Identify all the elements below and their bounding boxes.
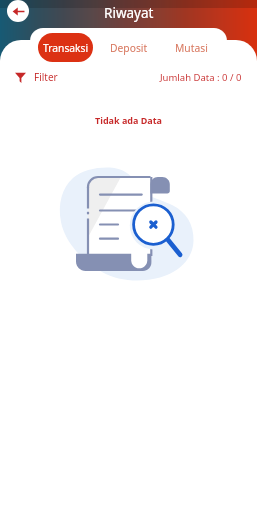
button[interactable]: Deposit — [97, 33, 160, 62]
staticText: Riwayat — [104, 4, 154, 22]
staticText: Filter — [34, 70, 58, 84]
staticText: Mutasi — [175, 41, 208, 55]
button[interactable]: Transaksi — [38, 33, 93, 62]
staticText: Tidak ada Data — [95, 114, 162, 126]
staticText: Transaksi — [43, 41, 89, 55]
button[interactable]: Mutasi — [160, 33, 223, 62]
staticText: Jumlah Data : 0 / 0 — [160, 71, 242, 84]
button[interactable]: Back — [7, 0, 29, 22]
button[interactable]: Filter — [15, 70, 58, 84]
staticText: Deposit — [110, 41, 148, 55]
